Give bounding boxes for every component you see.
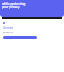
staticText: Gemini xyxy=(3,26,14,30)
staticText: while protecting your privacy xyxy=(2,2,26,9)
staticText: Google LLC xyxy=(3,31,14,34)
